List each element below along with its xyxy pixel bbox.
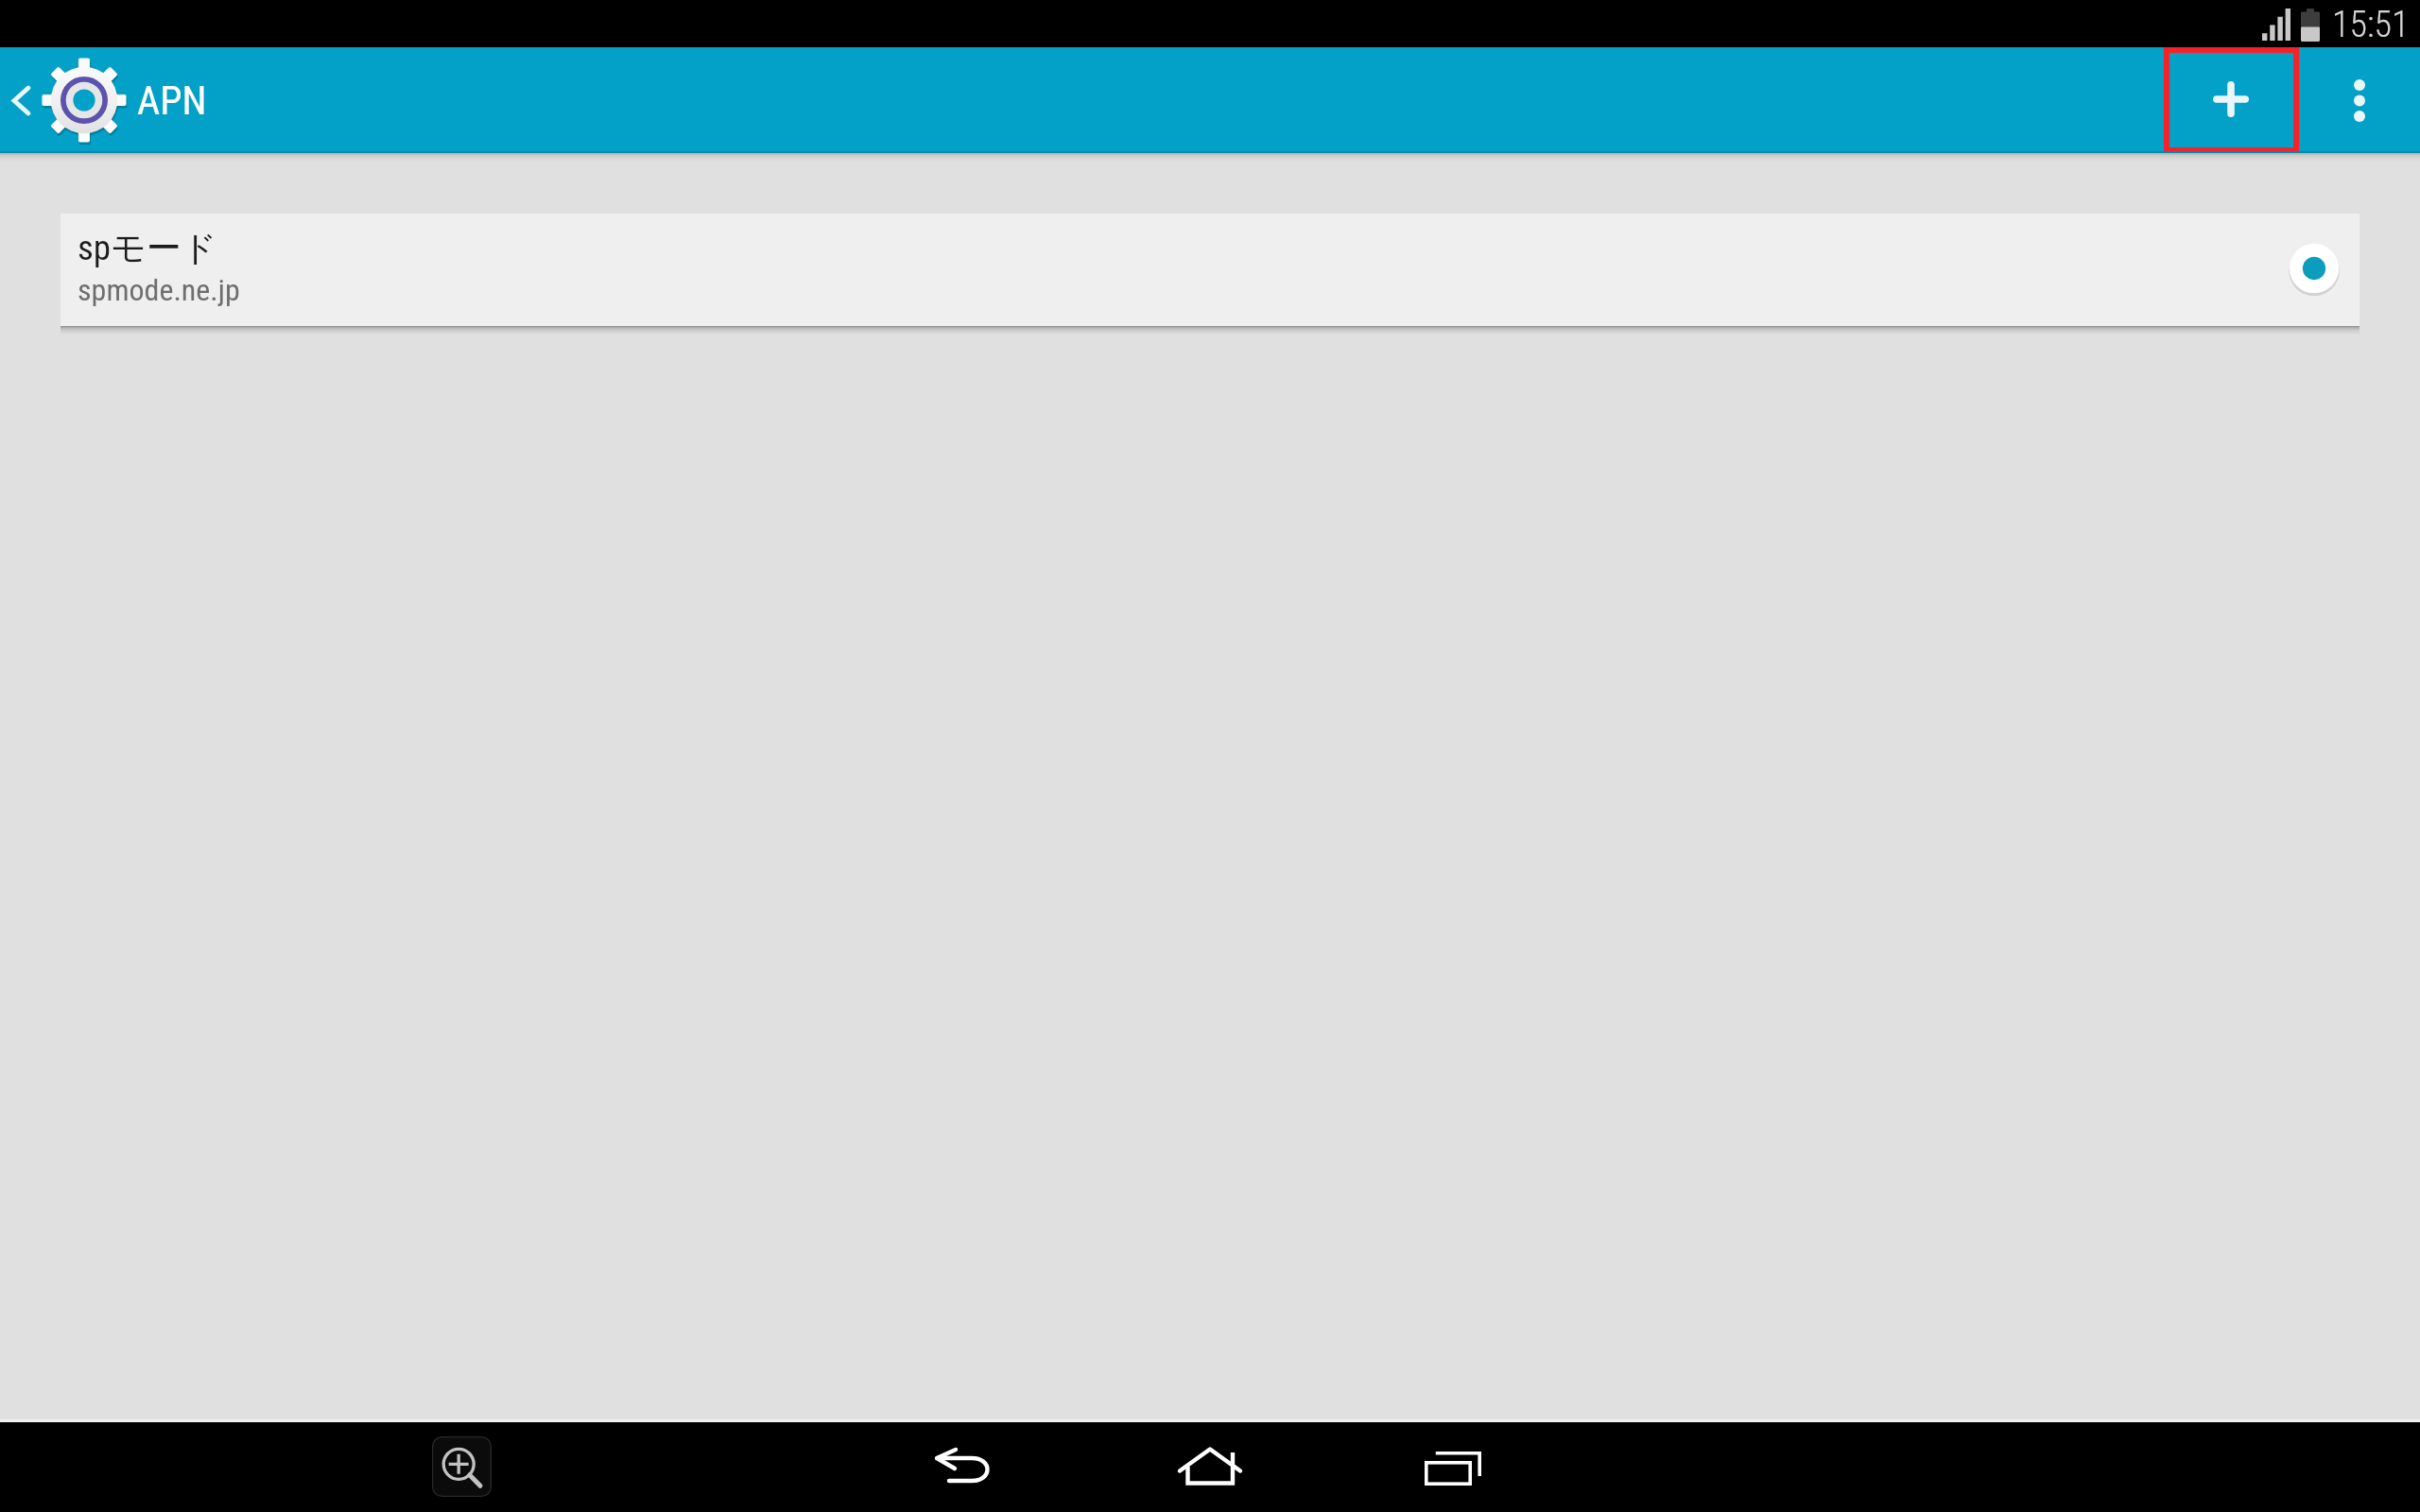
button[interactable]: Back (912, 1422, 1016, 1512)
button[interactable]: spモード (60, 214, 2359, 326)
staticText: spmode.ne.jp (78, 272, 240, 308)
staticText: 15:51 (2332, 4, 2410, 46)
button[interactable]: Navigate up (0, 47, 43, 153)
button[interactable]: Recent apps (1401, 1422, 1505, 1512)
staticText: APN (137, 77, 207, 124)
button[interactable]: Add APN (2164, 47, 2299, 153)
button[interactable]: Magnification (432, 1436, 492, 1497)
button[interactable]: Home (1158, 1422, 1262, 1512)
button[interactable]: Select spmode (2289, 243, 2340, 294)
staticText: spモード (78, 226, 217, 270)
button[interactable]: More options (2302, 47, 2420, 153)
